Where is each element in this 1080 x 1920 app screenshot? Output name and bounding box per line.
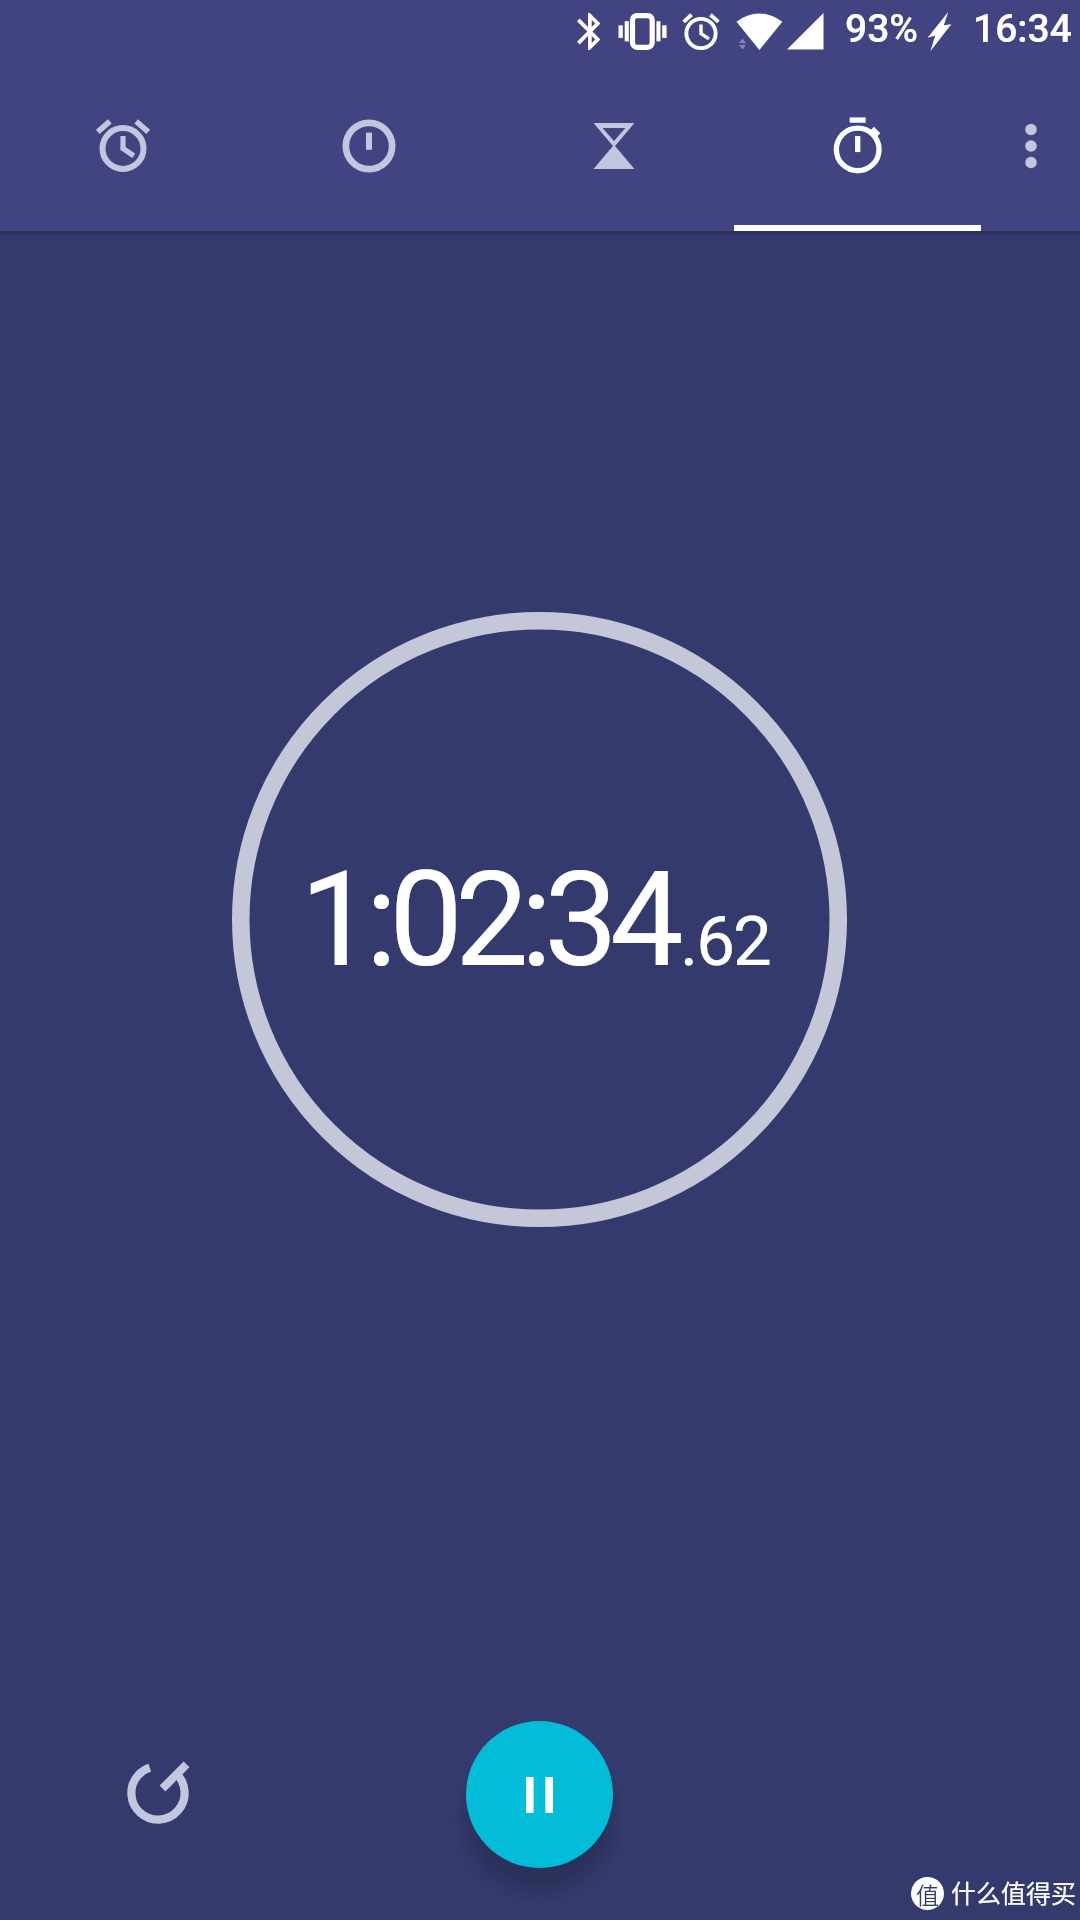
staticText: .62: [680, 901, 770, 982]
button[interactable]: Stopwatch: [737, 64, 982, 231]
staticText: 1:02:34: [300, 843, 676, 997]
button[interactable]: More options: [982, 64, 1080, 231]
staticText: 什么值得买: [951, 1874, 1077, 1910]
staticText: 93%: [845, 6, 919, 52]
button[interactable]: Reset: [98, 1733, 218, 1853]
staticText: 16:34: [973, 6, 1072, 52]
staticText: 值: [916, 1877, 939, 1910]
button[interactable]: Clock: [246, 64, 492, 231]
button[interactable]: Alarm: [0, 64, 246, 231]
button[interactable]: Pause: [466, 1721, 613, 1868]
button[interactable]: Timer: [492, 64, 737, 231]
